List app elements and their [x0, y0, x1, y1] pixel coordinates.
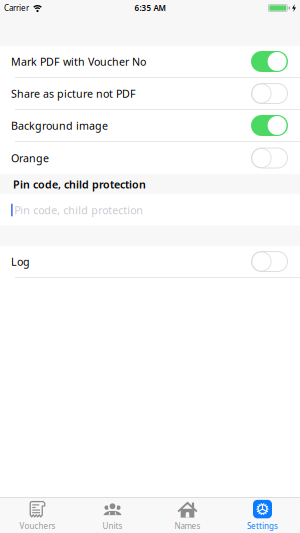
- button[interactable]: Log: [251, 251, 288, 272]
- button[interactable]: Orange: [251, 147, 288, 168]
- staticText: Pin code, child protection: [13, 177, 146, 191]
- staticText: Orange: [11, 151, 49, 165]
- button[interactable]: Units: [75, 498, 150, 533]
- button[interactable]: Share as picture not PDF: [251, 83, 288, 104]
- button[interactable]: Names: [150, 498, 225, 533]
- staticText: Settings: [247, 521, 278, 531]
- button[interactable]: Vouchers: [0, 498, 75, 533]
- button[interactable]: Background image: [251, 115, 288, 136]
- button[interactable]: Settings: [225, 498, 300, 533]
- button[interactable]: Pin code, child protection: [0, 194, 300, 225]
- button[interactable]: Mark PDF with Voucher No: [251, 51, 288, 72]
- staticText: Background image: [11, 118, 108, 133]
- staticText: Carrier: [4, 3, 29, 13]
- staticText: 6:35 AM: [134, 3, 165, 13]
- staticText: Mark PDF with Voucher No: [11, 54, 146, 69]
- staticText: Vouchers: [19, 521, 55, 531]
- staticText: Pin code, child protection: [14, 203, 143, 217]
- staticText: Units: [102, 521, 122, 531]
- staticText: Log: [11, 254, 30, 269]
- staticText: Share as picture not PDF: [11, 86, 136, 101]
- staticText: Names: [174, 521, 200, 531]
